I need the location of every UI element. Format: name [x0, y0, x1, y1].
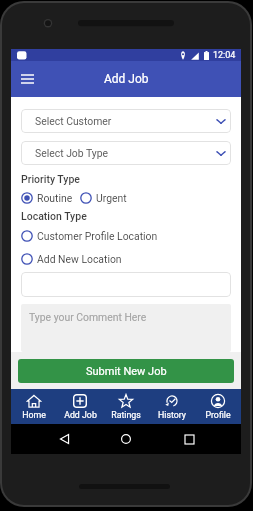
button[interactable]: Add Job	[57, 389, 103, 424]
button[interactable]: History	[149, 389, 195, 424]
staticText: Customer Profile Location	[37, 230, 158, 242]
button[interactable]: Select Job Type	[21, 141, 231, 165]
staticText: Add Job	[64, 410, 97, 420]
button[interactable]: Add New Location	[21, 253, 122, 265]
staticText: Location Type	[21, 210, 87, 222]
button[interactable]: Routine	[21, 192, 73, 204]
button[interactable]: Home	[11, 389, 57, 424]
button[interactable]: Back	[54, 429, 74, 449]
staticText: Submit New Job	[86, 365, 167, 378]
staticText: Urgent	[96, 192, 127, 204]
staticText: Select Job Type	[35, 147, 109, 159]
button[interactable]: Type your Comment Here	[21, 304, 231, 352]
button[interactable]: Ratings	[103, 389, 149, 424]
staticText: Add Job	[104, 72, 149, 86]
button[interactable]: Customer Profile Location	[21, 230, 158, 242]
button[interactable]: Select Customer	[21, 109, 231, 133]
staticText: Home	[22, 410, 46, 420]
staticText: Add New Location	[37, 253, 122, 265]
staticText: History	[158, 410, 186, 420]
button[interactable]: Recents	[179, 429, 199, 449]
staticText: Routine	[37, 192, 73, 204]
staticText: Select Customer	[35, 115, 112, 127]
staticText: Type your Comment Here	[29, 311, 147, 323]
staticText: Profile	[205, 410, 231, 420]
button[interactable]: Profile	[195, 389, 241, 424]
button[interactable]: Submit New Job	[18, 359, 234, 383]
button[interactable]: Menu	[15, 67, 39, 91]
staticText: Ratings	[111, 410, 141, 420]
staticText: 12:04	[213, 50, 236, 61]
button[interactable]: Urgent	[80, 192, 127, 204]
staticText: Priority Type	[21, 173, 80, 185]
button[interactable]: Home	[116, 429, 136, 449]
button[interactable]	[21, 272, 231, 297]
